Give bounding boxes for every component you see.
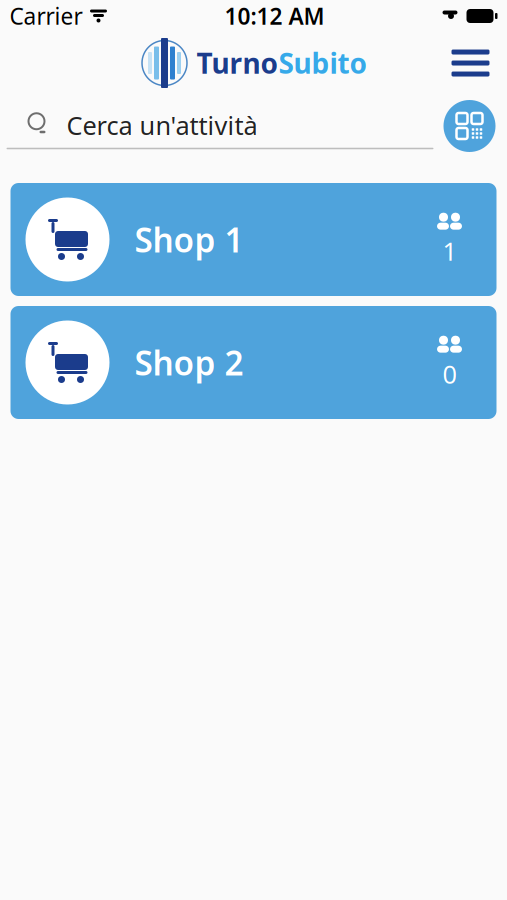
staticText: Shop 2 <box>134 340 243 385</box>
staticText: Cerca un'attività <box>66 108 257 142</box>
staticText: 0 <box>442 357 456 391</box>
button[interactable]: Menu <box>439 37 501 88</box>
staticText: Carrier <box>9 1 82 31</box>
staticText: 10:12 AM <box>224 1 324 31</box>
button[interactable]: Shop 2 <box>10 306 496 419</box>
staticText: 1 <box>442 234 456 268</box>
button[interactable]: Scan QR code <box>441 98 497 154</box>
staticText: Turno <box>196 44 278 82</box>
button[interactable]: Shop 1 <box>10 183 496 296</box>
staticText: Subito <box>278 44 367 82</box>
staticText: Shop 1 <box>134 217 243 262</box>
